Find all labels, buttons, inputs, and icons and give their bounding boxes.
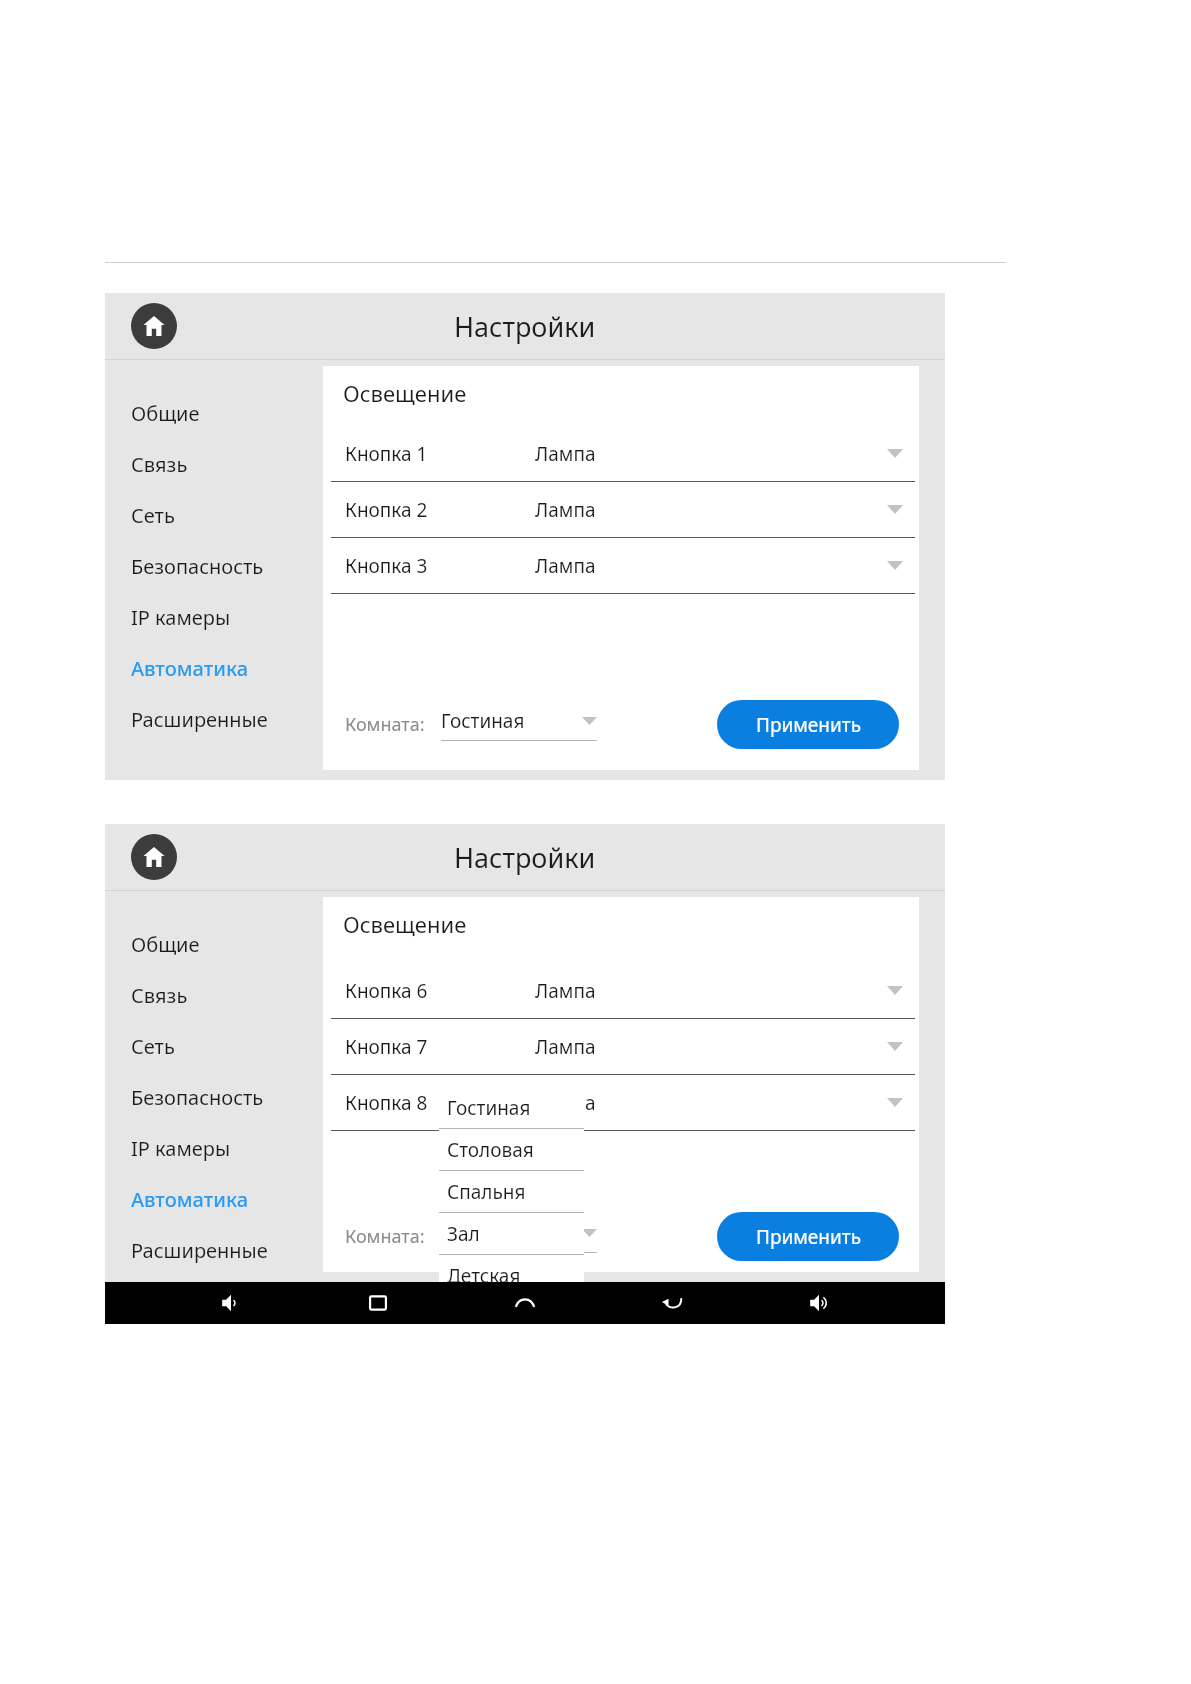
button[interactable]: Применить bbox=[717, 1212, 899, 1261]
staticText: Кнопка 7 bbox=[345, 1034, 535, 1060]
staticText: Кнопка 6 bbox=[345, 978, 535, 1004]
staticText: Безопасность bbox=[131, 553, 264, 580]
button[interactable]: Применить bbox=[717, 700, 899, 749]
staticText: Общие bbox=[131, 400, 200, 427]
staticText: Комната: bbox=[345, 712, 425, 737]
staticText: Освещение bbox=[343, 909, 467, 939]
staticText: Сеть bbox=[131, 1033, 175, 1060]
staticText: Кнопка 2 bbox=[345, 497, 535, 523]
button[interactable]: Гостиная bbox=[441, 1220, 597, 1253]
staticText: Связь bbox=[131, 451, 188, 478]
staticText: Гостиная bbox=[441, 708, 582, 734]
button[interactable]: Столовая bbox=[439, 1129, 584, 1170]
button[interactable]: Volume up bbox=[798, 1282, 840, 1324]
staticText: Расширенные bbox=[131, 706, 268, 733]
staticText: Гостиная bbox=[441, 1220, 582, 1246]
button[interactable]: Безопасность bbox=[105, 1072, 323, 1123]
button[interactable]: Зал bbox=[439, 1213, 584, 1254]
staticText: Комната: bbox=[345, 1224, 425, 1249]
button[interactable]: Сеть bbox=[105, 1021, 323, 1072]
button[interactable]: Гостиная bbox=[439, 1087, 584, 1128]
button[interactable]: Home bbox=[131, 834, 177, 880]
staticText: IP камеры bbox=[131, 604, 231, 631]
staticText: Детская bbox=[447, 1263, 521, 1289]
staticText: Общие bbox=[131, 931, 200, 958]
button[interactable]: Детская bbox=[439, 1255, 584, 1296]
staticText: Лампа bbox=[535, 441, 879, 467]
button[interactable]: Кнопка 6 bbox=[323, 963, 919, 1018]
button[interactable]: Автоматика bbox=[105, 643, 323, 694]
button[interactable]: Кнопка 8 bbox=[323, 1075, 919, 1130]
button[interactable]: Общие bbox=[105, 388, 323, 439]
button[interactable]: Recent apps bbox=[357, 1282, 399, 1324]
button[interactable]: Связь bbox=[105, 970, 323, 1021]
button[interactable]: Спальня bbox=[439, 1171, 584, 1212]
button[interactable]: Кнопка 1 bbox=[323, 426, 919, 481]
staticText: Спальня bbox=[447, 1179, 526, 1205]
staticText: Настройки bbox=[454, 308, 596, 345]
staticText: Безопасность bbox=[131, 1084, 264, 1111]
button[interactable]: Кнопка 7 bbox=[323, 1019, 919, 1074]
staticText: Лампа bbox=[535, 497, 879, 523]
staticText: Столовая bbox=[447, 1137, 534, 1163]
button[interactable]: Кнопка 2 bbox=[323, 482, 919, 537]
button[interactable]: Home bbox=[131, 303, 177, 349]
button[interactable]: IP камеры bbox=[105, 592, 323, 643]
button[interactable]: Кнопка 3 bbox=[323, 538, 919, 593]
staticText: IP камеры bbox=[131, 1135, 231, 1162]
staticText: Автоматика bbox=[131, 1186, 248, 1213]
staticText: Применить bbox=[756, 1224, 861, 1250]
button[interactable]: Общие bbox=[105, 919, 323, 970]
staticText: Гостиная bbox=[447, 1095, 531, 1121]
staticText: Лампа bbox=[535, 978, 879, 1004]
staticText: Применить bbox=[756, 712, 861, 738]
staticText: Настройки bbox=[454, 839, 596, 876]
staticText: Лампа bbox=[535, 1034, 879, 1060]
button[interactable]: Гостиная bbox=[441, 708, 597, 741]
button[interactable]: Расширенные bbox=[105, 694, 323, 745]
button[interactable]: Сеть bbox=[105, 490, 323, 541]
staticText: Лампа bbox=[535, 553, 879, 579]
staticText: Расширенные bbox=[131, 1237, 268, 1264]
button[interactable]: Home bbox=[504, 1282, 546, 1324]
staticText: Кнопка 3 bbox=[345, 553, 535, 579]
button[interactable]: Автоматика bbox=[105, 1174, 323, 1225]
button[interactable]: Расширенные bbox=[105, 1225, 323, 1276]
button[interactable]: Связь bbox=[105, 439, 323, 490]
staticText: Автоматика bbox=[131, 655, 248, 682]
staticText: Сеть bbox=[131, 502, 175, 529]
staticText: Освещение bbox=[343, 378, 467, 408]
staticText: Связь bbox=[131, 982, 188, 1009]
staticText: Кнопка 8 bbox=[345, 1090, 535, 1116]
button[interactable]: Безопасность bbox=[105, 541, 323, 592]
staticText: Кнопка 1 bbox=[345, 441, 535, 467]
button[interactable]: Back bbox=[651, 1282, 693, 1324]
staticText: Зал bbox=[447, 1221, 480, 1247]
button[interactable]: IP камеры bbox=[105, 1123, 323, 1174]
button[interactable]: Volume down bbox=[210, 1282, 252, 1324]
staticText: Лампа bbox=[535, 1090, 879, 1116]
